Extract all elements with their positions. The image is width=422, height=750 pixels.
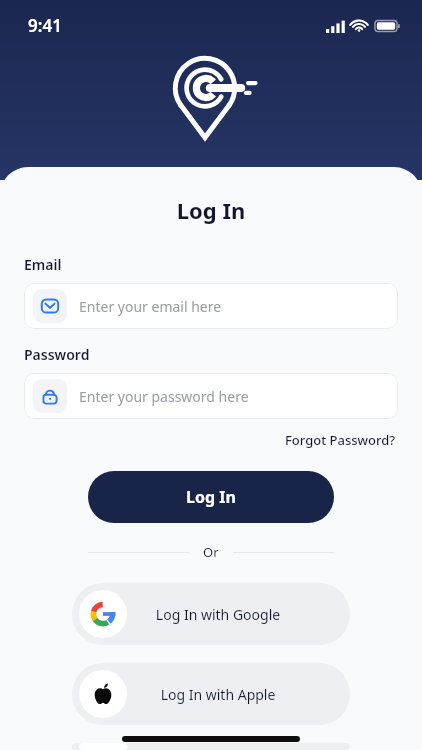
staticText: Log In with Apple <box>127 685 309 704</box>
staticText: 9:41 <box>28 14 62 37</box>
staticText: Log In <box>0 195 422 225</box>
staticText: Email <box>24 255 62 274</box>
button[interactable]: Forgot Password? <box>283 429 398 451</box>
button[interactable]: Enter your password here <box>24 373 398 419</box>
staticText: Log In <box>186 486 236 508</box>
button[interactable]: Log In with Google <box>72 583 350 645</box>
button[interactable]: Log In <box>88 471 334 523</box>
button[interactable]: Log In with Apple <box>72 663 350 725</box>
staticText: Password <box>24 345 90 364</box>
staticText: Log In with Google <box>127 605 309 624</box>
button[interactable]: Enter your email here <box>24 283 398 329</box>
staticText: Enter your email here <box>79 297 222 316</box>
button[interactable] <box>72 743 350 750</box>
staticText: Or <box>203 543 219 561</box>
staticText: Enter your password here <box>79 387 249 406</box>
